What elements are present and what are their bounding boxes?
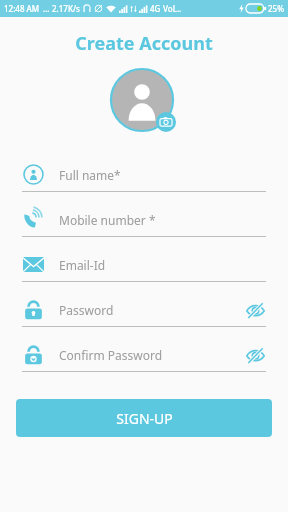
staticText: VoL.. — [163, 3, 182, 14]
staticText: 25% — [268, 3, 284, 14]
staticText: Create Account — [75, 31, 213, 56]
staticText: Password — [59, 302, 244, 318]
button[interactable]: Toggle password visibility — [244, 299, 266, 321]
button[interactable]: Change profile photo — [110, 68, 178, 136]
button[interactable]: Toggle password visibility — [244, 344, 266, 366]
staticText: Full name* — [59, 167, 266, 183]
button[interactable]: Password — [22, 293, 266, 338]
staticText: Mobile number * — [59, 212, 266, 228]
button[interactable]: Full name* — [22, 158, 266, 203]
button[interactable]: Take photo — [156, 112, 176, 132]
staticText: 12:48 AM — [4, 3, 40, 14]
staticText: ... — [43, 3, 50, 14]
button[interactable]: Mobile number * — [22, 203, 266, 248]
staticText: Email-Id — [59, 257, 266, 273]
staticText: 4G — [150, 3, 161, 14]
staticText: SIGN-UP — [116, 409, 173, 428]
button[interactable]: Email-Id — [22, 248, 266, 293]
button[interactable]: SIGN-UP — [16, 399, 272, 437]
staticText: 2.17K/s — [52, 3, 80, 14]
staticText: Confirm Password — [59, 347, 244, 363]
button[interactable]: Confirm Password — [22, 338, 266, 383]
